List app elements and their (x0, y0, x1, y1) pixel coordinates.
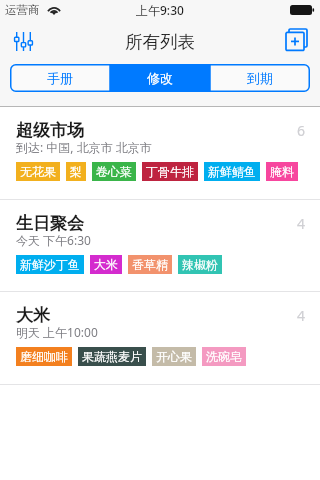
staticText: 大米 (16, 305, 50, 326)
staticText: 超级市场 (16, 120, 84, 141)
staticText: 大米 (94, 257, 118, 272)
staticText: 上午9:30 (136, 2, 184, 18)
button[interactable]: 到期 (210, 64, 310, 92)
staticText: 生日聚会 (16, 213, 84, 234)
staticText: 明天 上午10:00 (16, 324, 98, 340)
staticText: 卷心菜 (96, 164, 132, 179)
staticText: 4 (297, 306, 306, 325)
staticText: 洗碗皂 (206, 349, 242, 364)
button[interactable]: 修改 (110, 64, 210, 92)
staticText: 6 (297, 121, 306, 140)
staticText: 开心果 (156, 349, 192, 364)
staticText: 手册 (47, 70, 73, 86)
staticText: 果蔬燕麦片 (82, 349, 142, 364)
staticText: 腌料 (270, 164, 294, 179)
staticText: 新鲜鲭鱼 (208, 164, 256, 179)
staticText: 今天 下午6:30 (16, 232, 91, 248)
staticText: 无花果 (20, 164, 56, 179)
staticText: 修改 (147, 70, 173, 86)
staticText: 4 (297, 214, 306, 233)
button[interactable]: 生日聚会 (0, 200, 320, 292)
button[interactable]: 大米 (0, 292, 320, 385)
button[interactable]: 筛选 (6, 24, 42, 60)
button[interactable]: 超级市场 (0, 107, 320, 200)
staticText: 辣椒粉 (182, 257, 218, 272)
staticText: 所有列表 (125, 31, 195, 53)
staticText: 到期 (247, 70, 273, 86)
button[interactable]: 手册 (10, 64, 110, 92)
staticText: 到达: 中国, 北京市 北京市 (16, 139, 152, 155)
staticText: 运营商 (5, 3, 40, 17)
button[interactable]: 新建列表 (278, 24, 314, 60)
staticText: 香草精 (132, 257, 168, 272)
staticText: 梨 (70, 164, 82, 179)
staticText: 磨细咖啡 (20, 349, 68, 364)
staticText: 丁骨牛排 (146, 164, 194, 179)
staticText: 新鲜沙丁鱼 (20, 257, 80, 272)
